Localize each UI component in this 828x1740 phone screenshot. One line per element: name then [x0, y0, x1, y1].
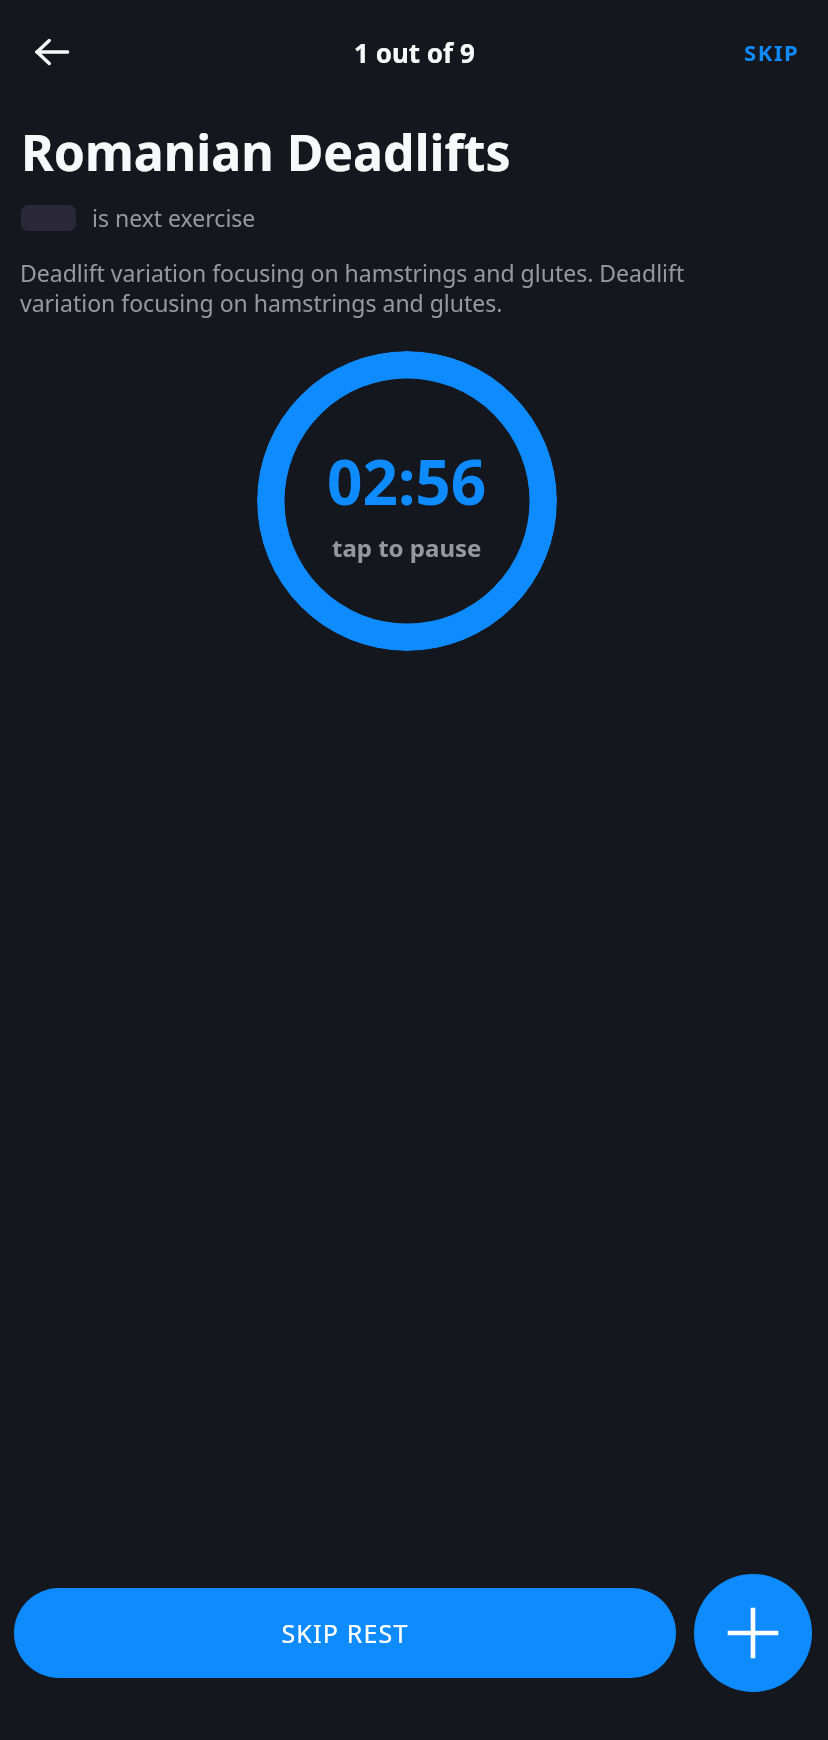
button[interactable]: SKIP [732, 27, 812, 77]
staticText: is next exercise [92, 202, 256, 233]
button[interactable]: Pause rest timer [257, 351, 557, 651]
button[interactable]: SKIP REST [14, 1588, 676, 1678]
staticText: Romanian Deadlifts [21, 118, 678, 186]
staticText: SKIP [744, 37, 800, 67]
staticText: Deadlift variation focusing on hamstring… [20, 257, 720, 319]
staticText: 02:56 [327, 439, 487, 523]
staticText: 1 out of 9 [354, 35, 475, 70]
staticText: SKIP REST [281, 1616, 409, 1650]
button[interactable]: Add time [694, 1574, 812, 1692]
staticText: tap to pause [332, 531, 482, 564]
button[interactable]: Back [22, 22, 82, 82]
